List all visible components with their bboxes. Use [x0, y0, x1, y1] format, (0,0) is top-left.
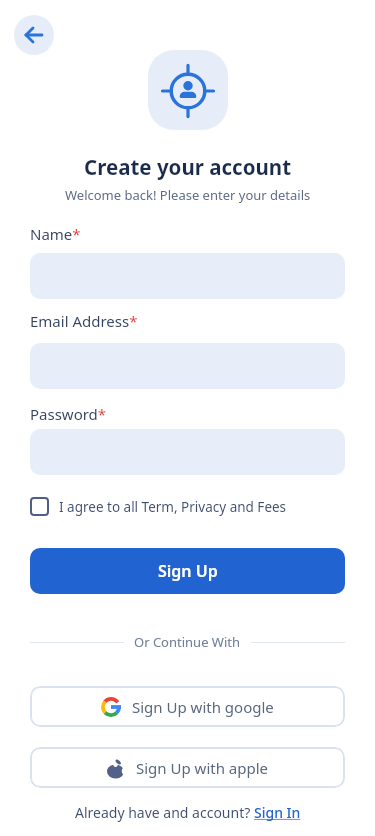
staticText: Sign Up [158, 560, 218, 582]
button[interactable] [14, 15, 54, 55]
staticText: Email Address* [30, 311, 138, 331]
staticText: Welcome back! Please enter your details [65, 186, 311, 204]
staticText: I agree to all Term, Privacy and Fees [59, 498, 287, 516]
staticText: Or Continue With [134, 633, 241, 651]
staticText: Sign In [254, 803, 301, 822]
staticText: Sign Up with google [132, 697, 274, 717]
button[interactable]: I agree to all Term, Privacy and Fees [30, 497, 287, 516]
button[interactable]: Sign Up [30, 548, 345, 594]
staticText: Already have and account? [75, 803, 254, 822]
button[interactable]: Sign Up with google [30, 686, 345, 727]
staticText: Name* [30, 224, 81, 244]
staticText: Create your account [84, 153, 292, 181]
button[interactable]: Sign Up with apple [30, 747, 345, 788]
button[interactable]: Sign In [254, 803, 301, 822]
staticText: Sign Up with apple [136, 758, 269, 778]
staticText: Password* [30, 404, 107, 424]
